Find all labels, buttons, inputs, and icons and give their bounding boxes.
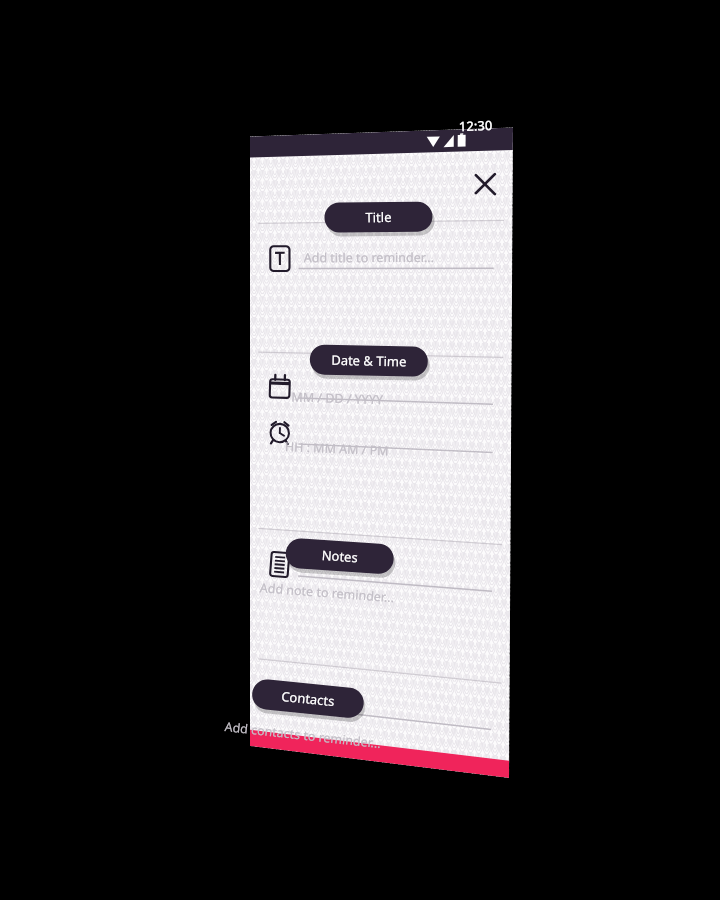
staticText: Add title to reminder... [303,250,434,267]
button[interactable] [263,547,497,600]
staticText: HH : MM AM / PM [303,426,407,447]
button[interactable]: Title [322,205,430,237]
button[interactable]: Close [474,167,496,200]
button[interactable] [262,677,495,737]
staticText: Date & Time [338,344,414,364]
button[interactable] [263,243,498,278]
staticText: Add contacts to reminder... [301,689,460,724]
button[interactable] [263,417,497,461]
button[interactable]: Contacts [318,649,432,690]
button[interactable] [263,371,498,412]
staticText: Notes [356,526,393,546]
button[interactable]: Date & Time [317,338,435,370]
staticText: MM / DD / YYYY [303,380,395,399]
staticText: Contacts [347,658,403,682]
button[interactable]: Notes [320,517,430,554]
staticText: Title [363,212,389,230]
staticText: Add note to reminder... [303,558,438,585]
staticText: 12:30 [455,130,489,150]
